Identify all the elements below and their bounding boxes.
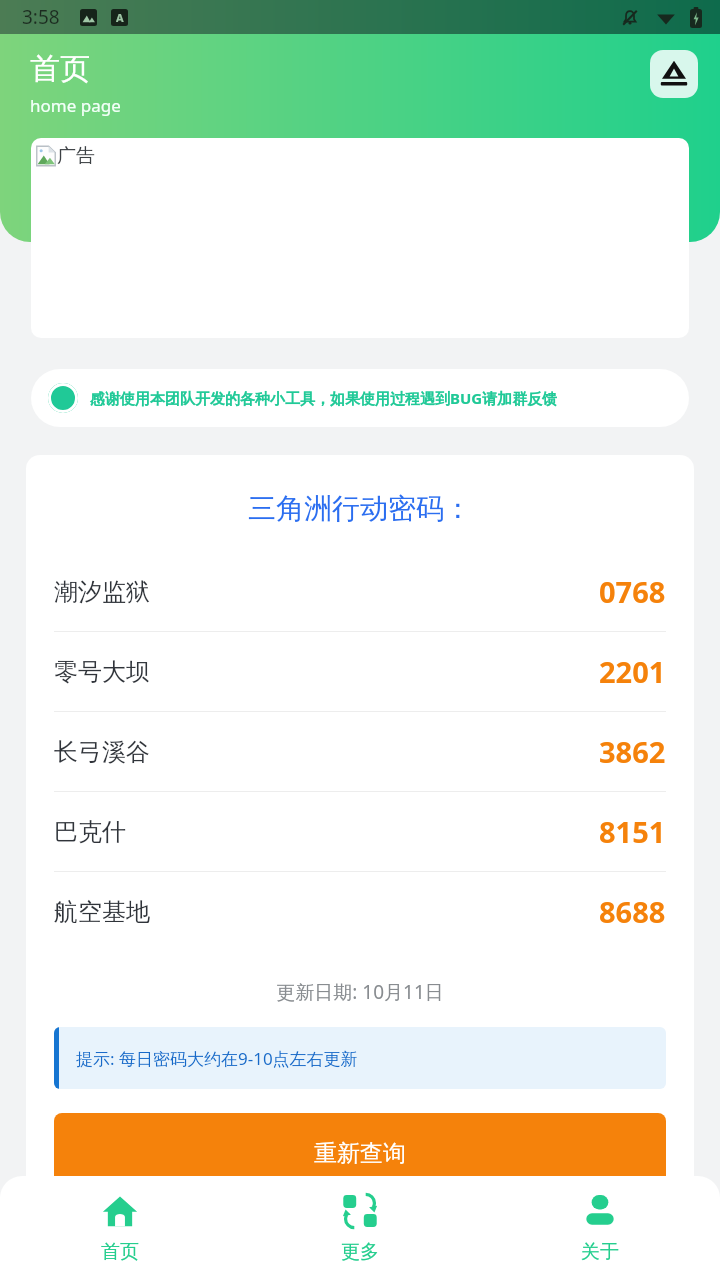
staticText: 三角洲行动密码： — [26, 491, 694, 526]
staticText: 航空基地 — [54, 897, 150, 927]
button[interactable]: App logo — [650, 50, 698, 98]
staticText: 关于 — [581, 1240, 619, 1264]
staticText: A — [116, 10, 124, 25]
button[interactable]: 广告 — [31, 138, 689, 338]
button[interactable]: More — [240, 1182, 480, 1274]
staticText: 0768 — [599, 572, 666, 611]
button[interactable]: 潮汐监狱 — [26, 552, 694, 631]
button[interactable]: 零号大坝 — [26, 632, 694, 711]
staticText: 3862 — [599, 732, 666, 771]
button[interactable]: 巴克什 — [26, 792, 694, 871]
other: Home — [101, 1192, 139, 1230]
staticText: 首页 — [101, 1240, 139, 1264]
staticText: 广告 — [57, 144, 95, 168]
button[interactable]: 感谢使用本团队开发的各种小工具，如果使用过程遇到BUG请加群反馈 — [31, 369, 689, 427]
button[interactable]: Home — [0, 1182, 240, 1274]
staticText: 更多 — [341, 1240, 379, 1264]
staticText: 长弓溪谷 — [54, 737, 150, 767]
staticText: 8151 — [599, 812, 666, 851]
staticText: 2201 — [599, 652, 666, 691]
staticText: 3:58 — [22, 4, 60, 30]
button[interactable]: 航空基地 — [26, 872, 694, 951]
staticText: 感谢使用本团队开发的各种小工具，如果使用过程遇到BUG请加群反馈 — [90, 388, 558, 408]
staticText: home page — [30, 94, 121, 117]
staticText: 提示: 每日密码大约在9-10点左右更新 — [76, 1047, 358, 1070]
button[interactable]: 重新查询 — [54, 1113, 666, 1193]
button[interactable]: 长弓溪谷 — [26, 712, 694, 791]
staticText: 潮汐监狱 — [54, 577, 150, 607]
staticText: 8688 — [599, 892, 666, 931]
staticText: 零号大坝 — [54, 657, 150, 687]
staticText: 更新日期: 10月11日 — [26, 979, 694, 1005]
other: About — [581, 1192, 619, 1230]
button[interactable]: About — [480, 1182, 720, 1274]
staticText: 重新查询 — [314, 1139, 406, 1168]
staticText: 首页 — [30, 50, 90, 88]
other: More — [341, 1192, 379, 1230]
staticText: 巴克什 — [54, 817, 126, 847]
